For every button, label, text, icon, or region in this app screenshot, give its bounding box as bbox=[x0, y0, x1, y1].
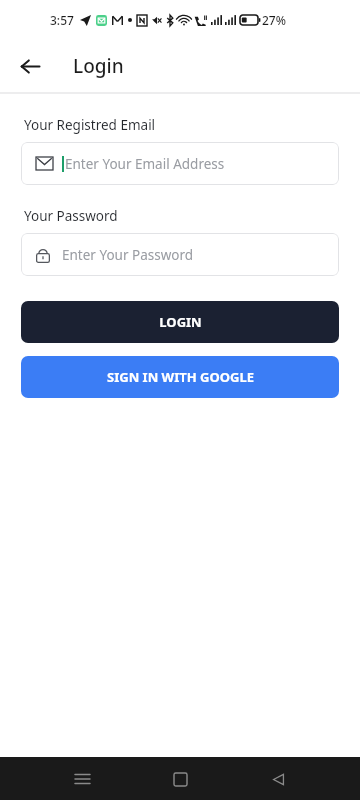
button[interactable]: SIGN IN WITH GOOGLE bbox=[21, 356, 339, 398]
button[interactable]: LOGIN bbox=[21, 301, 339, 343]
button[interactable]: Back bbox=[10, 46, 50, 86]
button[interactable]: Enter Your Email Address bbox=[21, 142, 339, 185]
staticText: SIGN IN WITH GOOGLE bbox=[107, 368, 254, 386]
staticText: Enter Your Email Address bbox=[65, 155, 225, 173]
button[interactable]: Home bbox=[159, 758, 201, 800]
staticText: 27% bbox=[262, 12, 286, 28]
button[interactable]: Enter Your Password bbox=[21, 233, 339, 276]
staticText: 3:57 bbox=[50, 12, 74, 28]
button[interactable]: Recent apps bbox=[61, 758, 103, 800]
staticText: LOGIN bbox=[159, 313, 202, 331]
staticText: Enter Your Password bbox=[62, 246, 194, 264]
staticText: Your Password bbox=[24, 207, 118, 225]
button[interactable]: Back bbox=[257, 758, 299, 800]
staticText: Your Registred Email bbox=[24, 116, 156, 134]
staticText: Login bbox=[73, 53, 124, 79]
